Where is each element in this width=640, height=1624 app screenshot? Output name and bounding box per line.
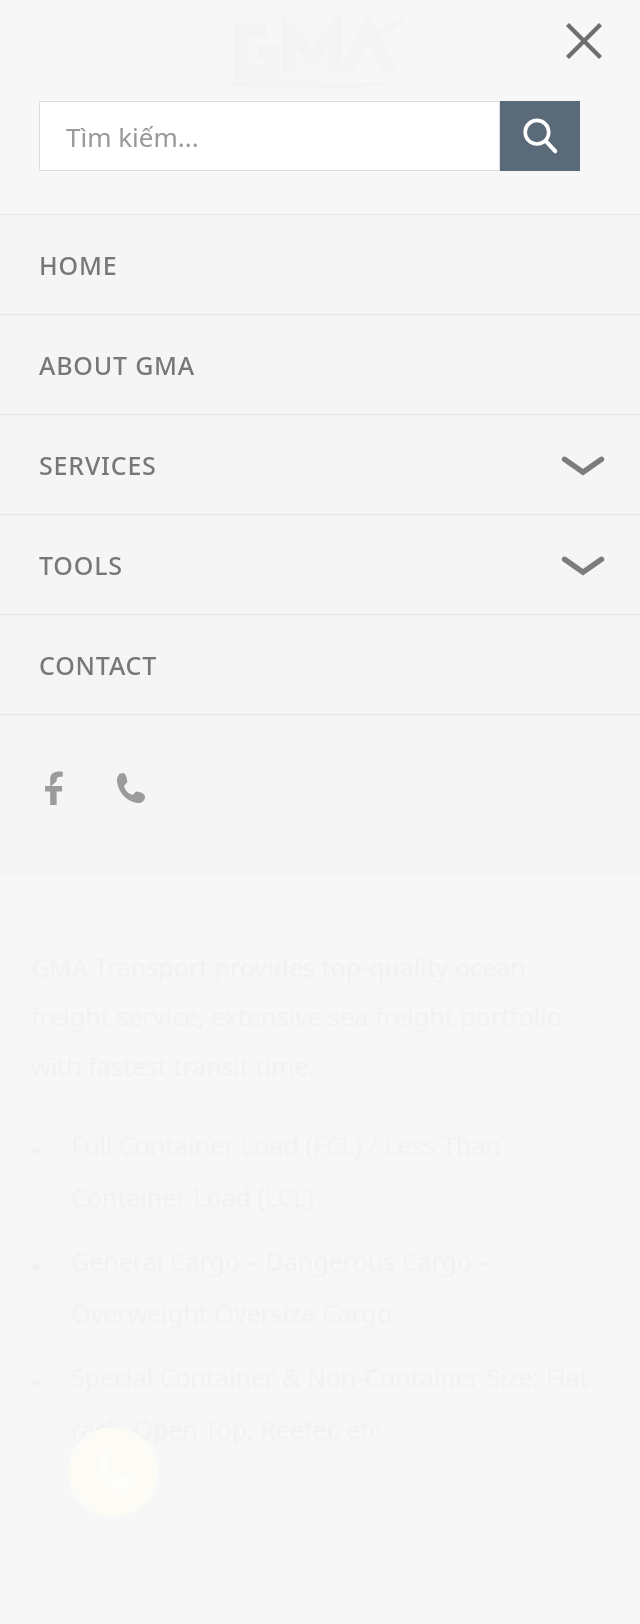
- staticText: HOME: [39, 248, 118, 282]
- staticText: Tìm kiếm...: [66, 119, 199, 154]
- button[interactable]: ABOUT GMA: [0, 315, 640, 414]
- button[interactable]: Search: [500, 101, 580, 171]
- button[interactable]: SERVICES: [0, 415, 640, 514]
- button[interactable]: Phone: [103, 761, 157, 815]
- button[interactable]: HOME: [0, 215, 640, 314]
- staticText: ABOUT GMA: [39, 348, 196, 382]
- button[interactable]: TOOLS: [0, 515, 640, 614]
- button[interactable]: Close menu: [555, 12, 613, 70]
- staticText: CONTACT: [39, 648, 158, 682]
- button[interactable]: Tìm kiếm...: [40, 102, 499, 170]
- button[interactable]: CONTACT: [0, 615, 640, 714]
- staticText: TOOLS: [39, 548, 123, 582]
- staticText: SERVICES: [39, 448, 157, 482]
- button[interactable]: Facebook: [31, 761, 85, 815]
